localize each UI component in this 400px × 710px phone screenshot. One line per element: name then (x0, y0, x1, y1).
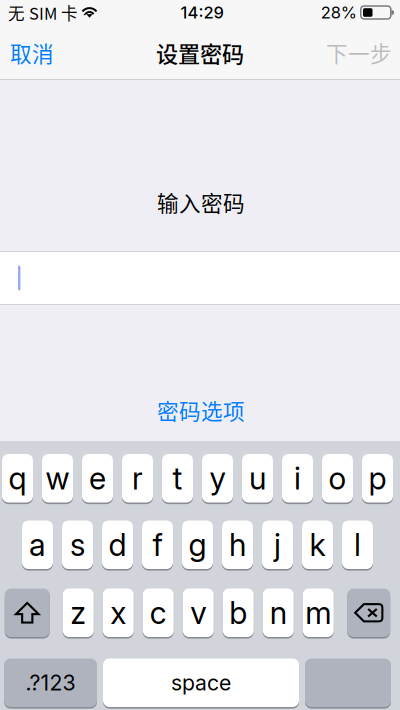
button[interactable]: b (223, 588, 254, 637)
button[interactable]: n (263, 588, 294, 637)
button[interactable]: c (143, 588, 174, 637)
staticText: h (229, 526, 246, 563)
button[interactable]: x (103, 588, 134, 637)
staticText: x (110, 594, 126, 631)
staticText: i (294, 460, 301, 497)
staticText: b (229, 594, 247, 631)
staticText: f (152, 526, 162, 563)
button[interactable]: l (342, 520, 373, 569)
staticText: 14:29 (180, 2, 223, 22)
button[interactable]: Delete (347, 588, 390, 637)
button[interactable]: a (22, 520, 53, 569)
button[interactable]: g (182, 520, 213, 569)
button[interactable]: z (63, 588, 94, 637)
staticText: e (89, 460, 106, 497)
button[interactable]: t (162, 454, 193, 502)
button[interactable]: o (322, 454, 353, 502)
button[interactable]: .?123 (4, 658, 97, 707)
button[interactable]: space (103, 658, 299, 707)
button[interactable]: i (282, 454, 313, 502)
staticText: 取消 (10, 37, 54, 68)
staticText: p (368, 460, 386, 497)
staticText: .?123 (25, 670, 75, 696)
staticText: l (354, 526, 361, 563)
staticText: s (70, 526, 85, 563)
button[interactable]: j (262, 520, 293, 569)
staticText: u (249, 460, 266, 497)
staticText: k (309, 526, 325, 563)
button[interactable]: w (42, 454, 73, 502)
staticText: j (274, 526, 281, 563)
button[interactable]: k (302, 520, 333, 569)
staticText: c (150, 594, 167, 631)
button[interactable]: 取消 (0, 25, 72, 80)
staticText: t (172, 460, 182, 497)
staticText: a (29, 526, 46, 563)
button[interactable]: r (122, 454, 153, 502)
staticText: d (108, 526, 126, 563)
button[interactable]: v (183, 588, 214, 637)
button[interactable]: h (222, 520, 253, 569)
button[interactable]: d (102, 520, 133, 569)
staticText: space (171, 670, 231, 696)
staticText: r (132, 460, 143, 497)
staticText: q (8, 460, 26, 497)
staticText: o (328, 460, 346, 497)
staticText: w (45, 460, 69, 497)
staticText: m (305, 594, 331, 631)
staticText: 输入密码 (157, 186, 245, 218)
button[interactable]: e (82, 454, 113, 502)
staticText: n (270, 594, 287, 631)
staticText: y (209, 460, 225, 497)
button[interactable]: p (362, 454, 393, 502)
staticText: v (190, 594, 206, 631)
staticText: g (188, 526, 206, 563)
button[interactable]: y (202, 454, 233, 502)
staticText: 28% (321, 2, 357, 22)
button[interactable] (305, 658, 391, 707)
button[interactable]: q (2, 454, 33, 502)
button[interactable]: s (62, 520, 93, 569)
button[interactable]: u (242, 454, 273, 502)
button[interactable]: 密码选项 (141, 393, 261, 427)
staticText: 下一步 (326, 37, 392, 68)
button[interactable]: 下一步 (307, 25, 400, 80)
button[interactable]: m (303, 588, 334, 637)
staticText: 设置密码 (156, 36, 244, 68)
staticText: 密码选项 (157, 394, 245, 426)
staticText: z (70, 594, 86, 631)
staticText: 无 SIM 卡 (8, 0, 78, 24)
button[interactable]: Shift (5, 588, 50, 637)
button[interactable]: f (142, 520, 173, 569)
